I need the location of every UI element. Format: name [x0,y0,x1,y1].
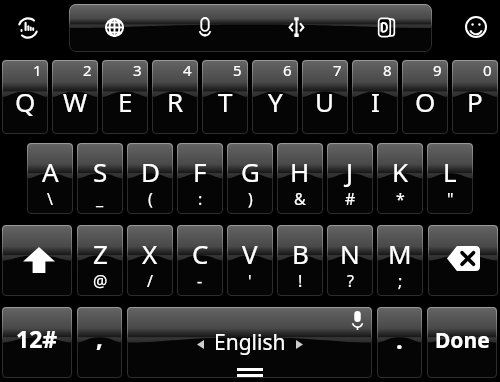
staticText: V [242,236,258,271]
button[interactable]: Backspace [428,225,498,296]
staticText: * [396,188,405,210]
button[interactable]: M [377,225,423,296]
button[interactable]: V [227,225,273,296]
staticText: M [388,236,412,271]
button[interactable]: I [352,60,398,134]
button[interactable]: Voice input [184,4,226,52]
button[interactable]: T [202,60,248,134]
staticText: @ [93,270,108,292]
staticText: . [396,323,403,356]
staticText: 3 [133,60,142,80]
staticText: 2 [83,60,92,80]
staticText: Z [93,236,108,271]
staticText: F [193,154,207,189]
button[interactable]: U [302,60,348,134]
button[interactable]: S [77,143,123,214]
button[interactable]: Done [427,307,497,378]
staticText: " [447,188,454,210]
button[interactable]: K [377,143,423,214]
staticText: 9 [433,60,442,80]
button[interactable]: Cursor control [275,4,317,52]
staticText: A [42,154,59,189]
staticText: / [147,270,153,292]
staticText: # [345,188,356,210]
button[interactable]: D [127,143,173,214]
staticText: ? [347,270,354,292]
staticText: \ [47,188,53,210]
staticText: English [214,328,286,357]
button[interactable]: Z [77,225,123,296]
staticText: , [96,321,103,354]
staticText: J [346,154,354,189]
button[interactable]: A [27,143,73,214]
button[interactable]: R [152,60,198,134]
button[interactable]: Y [252,60,298,134]
staticText: Y [268,84,283,119]
staticText: _ [96,188,104,210]
button[interactable]: E [102,60,148,134]
button[interactable]: G [227,143,273,214]
staticText: Q [15,84,36,119]
button[interactable]: Dictionary [365,4,407,52]
staticText: W [63,84,88,119]
staticText: 1 [33,60,42,80]
staticText: Done [435,326,490,355]
staticText: 8 [383,60,392,80]
staticText: 12# [16,323,58,354]
button[interactable]: J [327,143,373,214]
staticText: X [142,236,158,271]
button[interactable]: 12# [2,307,72,378]
staticText: P [467,84,483,119]
staticText: D [141,154,160,189]
staticText: G [241,154,260,189]
button[interactable]: Shift [2,225,72,296]
staticText: 4 [183,60,192,80]
button[interactable]: P [452,60,498,134]
staticText: O [415,84,436,119]
staticText: N [340,236,360,271]
button[interactable]: C [177,225,223,296]
staticText: ! [298,270,303,292]
button[interactable]: X [127,225,173,296]
button[interactable]: N [327,225,373,296]
staticText: U [315,84,335,119]
button[interactable]: B [277,225,323,296]
staticText: - [197,270,203,292]
button[interactable]: Q [2,60,48,134]
button[interactable]: F [177,143,223,214]
button[interactable]: Emoji [459,10,493,44]
staticText: S [93,154,108,189]
button[interactable]: H [277,143,323,214]
button[interactable]: Input method [9,10,43,44]
staticText: : [198,188,203,210]
staticText: 0 [483,60,492,80]
staticText: C [192,236,209,271]
staticText: K [392,154,409,189]
staticText: B [292,236,309,271]
button[interactable]: , [77,307,122,378]
staticText: 6 [283,60,292,80]
button[interactable]: . [377,307,422,378]
staticText: H [290,154,310,189]
button[interactable]: Language [93,4,135,52]
staticText: ( [148,188,153,210]
staticText: & [294,188,306,210]
staticText: ' [248,270,252,292]
staticText: ; [398,270,403,292]
staticText: R [167,84,184,119]
button[interactable]: Space [127,307,372,378]
button[interactable]: O [402,60,448,134]
staticText: 7 [333,60,342,80]
button[interactable]: W [52,60,98,134]
staticText: T [218,84,233,119]
staticText: 5 [233,60,242,80]
staticText: I [371,84,380,119]
button[interactable]: L [427,143,473,214]
staticText: L [443,154,457,189]
staticText: ) [248,188,253,210]
staticText: E [118,84,133,119]
